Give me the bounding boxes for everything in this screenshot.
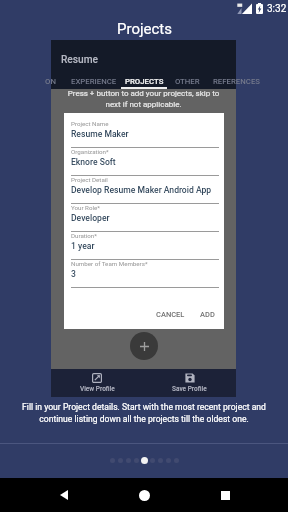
button[interactable]: Back [47, 478, 81, 512]
staticText: Number of Team Members* [71, 260, 148, 267]
staticText: Your Role* [71, 204, 100, 211]
staticText: Project Detail [71, 176, 108, 183]
staticText: Press + button to add your projects, ski… [65, 89, 222, 109]
staticText: Resume [61, 54, 99, 66]
staticText: Developer [71, 213, 110, 223]
button[interactable]: Recent apps [208, 478, 242, 512]
staticText: 3:32 [267, 3, 287, 15]
button[interactable]: EXPERIENCE [69, 73, 118, 89]
button[interactable]: CANCEL [152, 307, 189, 322]
button[interactable]: View Profile [51, 369, 143, 397]
button[interactable]: ON [42, 73, 58, 89]
button[interactable]: Add project [130, 332, 158, 360]
staticText: 1 year [71, 241, 95, 251]
staticText: EXPERIENCE [71, 77, 117, 86]
staticText: Duration* [71, 232, 97, 239]
button[interactable]: Save Profile [143, 369, 236, 397]
staticText: Organization* [71, 148, 109, 155]
staticText: ON [45, 77, 56, 86]
staticText: 3 [71, 269, 76, 279]
button[interactable]: PROJECTS [121, 73, 167, 89]
staticText: PROJECTS [125, 77, 164, 86]
staticText: Develop Resume Maker Android App [71, 185, 212, 195]
button[interactable]: OTHER [175, 73, 200, 89]
staticText: Save Profile [172, 385, 207, 393]
staticText: ADD [200, 310, 215, 319]
staticText: CANCEL [156, 310, 185, 319]
staticText: Eknore Soft [71, 157, 116, 167]
staticText: Resume Maker [71, 129, 129, 139]
staticText: Project Name [71, 120, 109, 127]
staticText: Fill in your Project details. Start with… [10, 402, 278, 424]
button[interactable]: REFERENCES [212, 73, 260, 89]
staticText: Projects [117, 20, 172, 38]
staticText: View Profile [80, 385, 115, 393]
button[interactable]: Home [127, 478, 161, 512]
button[interactable]: ADD [196, 307, 219, 322]
staticText: REFERENCES [213, 77, 260, 86]
staticText: OTHER [175, 77, 200, 86]
